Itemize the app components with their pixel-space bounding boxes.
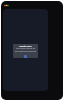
staticText: and cannot be reversed later: [13, 50, 38, 53]
staticText: This action cannot be undone: [13, 47, 38, 50]
button[interactable]: Delete file?: [13, 44, 38, 58]
staticText: Delete file?: [19, 45, 32, 48]
button[interactable]: Window controls: [4, 4, 10, 7]
button[interactable]: Confirm: [24, 55, 27, 58]
